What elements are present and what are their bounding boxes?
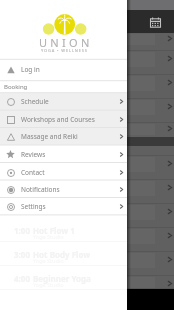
- button[interactable]: [0, 180, 174, 204]
- staticText: Beginner Yoga: [33, 273, 91, 284]
- button[interactable]: Settings: [0, 198, 127, 215]
- staticText: 4:00: [14, 273, 30, 284]
- button[interactable]: Calendar: [147, 14, 163, 30]
- button[interactable]: Schedule: [0, 93, 127, 110]
- staticText: Yoga Studio: [33, 281, 64, 288]
- button[interactable]: 4:00: [0, 266, 127, 290]
- staticText: Massage and Reiki: [21, 132, 78, 141]
- button[interactable]: [0, 156, 174, 180]
- staticText: Workshops and Courses: [21, 115, 95, 124]
- staticText: Hot Body Flow: [33, 249, 91, 260]
- staticText: 3:00: [14, 249, 30, 260]
- staticText: Reviews: [21, 150, 46, 159]
- button[interactable]: Massage and Reiki: [0, 128, 127, 145]
- staticText: Yoga Studio: [33, 233, 64, 240]
- button[interactable]: [0, 228, 174, 252]
- button[interactable]: [0, 99, 174, 123]
- button[interactable]: [0, 204, 174, 228]
- button[interactable]: 1:00: [0, 218, 127, 242]
- button[interactable]: [0, 123, 174, 156]
- staticText: 1:00: [14, 225, 30, 236]
- button[interactable]: Contact: [0, 163, 127, 181]
- staticText: Settings: [21, 202, 46, 211]
- button[interactable]: Reviews: [0, 145, 127, 163]
- button[interactable]: [0, 75, 174, 99]
- button[interactable]: [0, 252, 174, 276]
- staticText: UNION: [39, 35, 93, 50]
- staticText: YOGA • WELLNESS: [41, 48, 88, 53]
- button[interactable]: 3:00: [0, 242, 127, 266]
- staticText: Booking: [4, 83, 28, 91]
- button[interactable]: [0, 33, 174, 51]
- staticText: Notifications: [21, 185, 60, 194]
- button[interactable]: Log in: [0, 59, 127, 80]
- staticText: Contact: [21, 168, 45, 177]
- staticText: Hot Flow 1: [33, 225, 75, 236]
- button[interactable]: [0, 51, 174, 75]
- button[interactable]: [0, 276, 174, 289]
- staticText: Schedule: [21, 97, 49, 106]
- button[interactable]: Notifications: [0, 180, 127, 198]
- staticText: Log in: [21, 65, 40, 74]
- button[interactable]: Workshops and Courses: [0, 110, 127, 128]
- staticText: Yoga Studio: [33, 257, 64, 264]
